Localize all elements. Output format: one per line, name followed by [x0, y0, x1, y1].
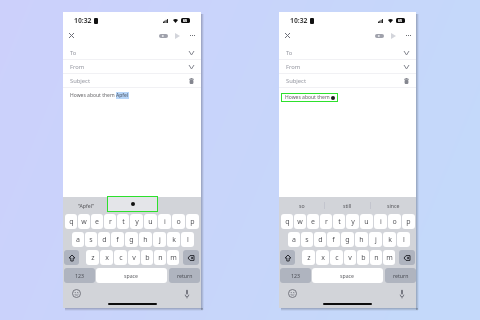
button[interactable]: More options	[187, 30, 198, 41]
button[interactable]: g	[125, 232, 138, 247]
button[interactable]: k	[167, 232, 180, 247]
button[interactable]: c	[114, 250, 127, 265]
staticText: since	[387, 202, 400, 209]
button[interactable]: Close	[66, 30, 77, 41]
button[interactable]: n	[370, 250, 382, 265]
button[interactable]: t	[333, 214, 345, 229]
button[interactable]: To	[63, 46, 201, 59]
button[interactable]: Subject	[279, 74, 416, 87]
button[interactable]: 123	[64, 268, 95, 283]
button[interactable]: r	[320, 214, 332, 229]
button[interactable]: w	[294, 214, 306, 229]
button[interactable]: p	[186, 214, 199, 229]
staticText: y	[351, 217, 355, 227]
button[interactable]: From	[279, 60, 416, 73]
button[interactable]: Delete	[183, 250, 199, 265]
button[interactable]: x	[100, 250, 113, 265]
button[interactable]: b	[141, 250, 153, 265]
button[interactable]: q	[65, 214, 77, 229]
button[interactable]: w	[78, 214, 90, 229]
button[interactable]: Attach	[157, 30, 169, 42]
button[interactable]: j	[369, 232, 382, 247]
button[interactable]: e	[91, 214, 103, 229]
button[interactable]	[109, 197, 155, 213]
staticText: return	[177, 272, 193, 279]
button[interactable]: so	[279, 197, 324, 213]
button[interactable]: space	[96, 268, 167, 283]
button[interactable]: y	[346, 214, 359, 229]
button[interactable]: 123	[280, 268, 311, 283]
staticText: h	[143, 235, 148, 245]
button[interactable]: To	[279, 46, 416, 59]
button[interactable]	[108, 197, 157, 211]
staticText: 10:32	[290, 16, 308, 25]
button[interactable]: i	[158, 214, 171, 229]
button[interactable]: space	[312, 268, 383, 283]
button[interactable]: l	[397, 232, 410, 247]
button[interactable]: m	[167, 250, 179, 265]
button[interactable]: f	[111, 232, 124, 247]
button[interactable]: d	[98, 232, 110, 247]
button[interactable]: h	[139, 232, 152, 247]
button[interactable]: y	[130, 214, 143, 229]
button[interactable]: Send	[172, 30, 183, 41]
button[interactable]: Dictate	[399, 289, 405, 299]
button[interactable]: b	[357, 250, 369, 265]
button[interactable]: z	[86, 250, 99, 265]
button[interactable]: Shift	[64, 250, 79, 265]
button[interactable]: “Apfel”	[63, 197, 109, 213]
button[interactable]: z	[302, 250, 315, 265]
button[interactable]: u	[144, 214, 157, 229]
staticText: return	[393, 272, 409, 279]
button[interactable]: Attach	[373, 30, 385, 42]
button[interactable]: k	[383, 232, 396, 247]
button[interactable]: a	[72, 232, 84, 247]
button[interactable]: since	[370, 197, 416, 213]
button[interactable]: x	[316, 250, 329, 265]
button[interactable]: f	[327, 232, 340, 247]
button[interactable]: m	[383, 250, 395, 265]
button[interactable]: Emoji	[72, 289, 81, 298]
button[interactable]: i	[374, 214, 387, 229]
button[interactable]: Send	[388, 30, 399, 41]
button[interactable]: More options	[403, 30, 414, 41]
button[interactable]: return	[385, 268, 416, 283]
button[interactable]: d	[314, 232, 326, 247]
button[interactable]: Howes about them	[285, 94, 335, 101]
button[interactable]: l	[181, 232, 194, 247]
button[interactable]: Dictate	[184, 289, 190, 299]
button[interactable]: return	[169, 268, 200, 283]
button[interactable]: h	[355, 232, 368, 247]
button[interactable]: From	[63, 60, 201, 73]
button[interactable]: v	[128, 250, 140, 265]
button[interactable]: p	[402, 214, 415, 229]
button[interactable]: r	[104, 214, 116, 229]
button[interactable]: s	[85, 232, 97, 247]
staticText: Subject	[286, 77, 306, 85]
button[interactable]: still	[324, 197, 370, 213]
button[interactable]: u	[360, 214, 373, 229]
button[interactable]: Emoji	[288, 289, 297, 298]
button[interactable]: e	[307, 214, 319, 229]
staticText: b	[361, 253, 366, 263]
button[interactable]: t	[117, 214, 129, 229]
staticText: o	[392, 217, 397, 227]
button[interactable]: Subject	[63, 74, 201, 87]
staticText: d	[318, 235, 323, 245]
staticText: Apfel	[116, 92, 129, 99]
button[interactable]: n	[154, 250, 166, 265]
button[interactable]: g	[341, 232, 354, 247]
button[interactable]: j	[153, 232, 166, 247]
button[interactable]: c	[330, 250, 343, 265]
button[interactable]: a	[288, 232, 300, 247]
button[interactable]: Delete	[399, 250, 415, 265]
button[interactable]: Close	[282, 30, 293, 41]
staticText: “Apfel”	[78, 202, 94, 209]
button[interactable]: q	[281, 214, 293, 229]
button[interactable]: o	[172, 214, 185, 229]
button[interactable]: s	[301, 232, 313, 247]
button[interactable]: v	[344, 250, 356, 265]
button[interactable]: o	[388, 214, 401, 229]
button[interactable]	[155, 197, 201, 213]
button[interactable]: Shift	[280, 250, 295, 265]
